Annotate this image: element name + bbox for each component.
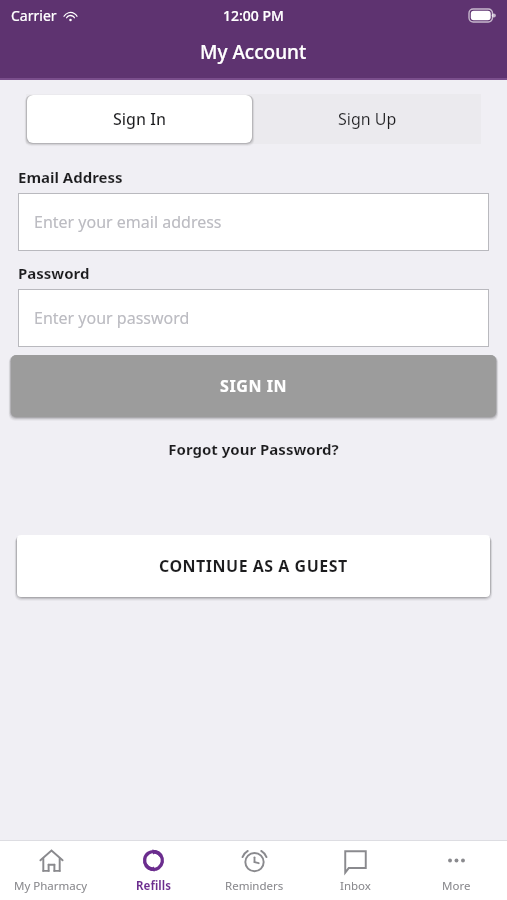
staticText: Enter your password [34, 307, 190, 329]
staticText: Reminders [225, 878, 284, 894]
staticText: CONTINUE AS A GUEST [159, 555, 348, 577]
staticText: Email Address [18, 167, 123, 187]
button[interactable]: Inbox [305, 841, 406, 900]
button[interactable]: Sign Up [253, 94, 481, 144]
staticText: Carrier [11, 6, 57, 25]
button[interactable]: My Pharmacy [0, 841, 102, 900]
button[interactable]: More [406, 841, 507, 900]
button[interactable]: Sign In [27, 95, 252, 143]
button[interactable]: Refills [102, 841, 204, 900]
staticText: Enter your email address [34, 211, 222, 233]
staticText: 12:00 PM [223, 6, 284, 25]
staticText: My Account [200, 39, 307, 65]
button[interactable]: Enter your password [18, 289, 489, 347]
staticText: More [442, 878, 471, 894]
staticText: My Pharmacy [14, 878, 88, 894]
staticText: Sign Up [338, 108, 397, 130]
staticText: Password [18, 263, 90, 283]
button[interactable]: Forgot your Password? [0, 435, 507, 463]
button[interactable]: Reminders [204, 841, 305, 900]
staticText: SIGN IN [220, 375, 288, 397]
button[interactable]: SIGN IN [11, 355, 496, 417]
button[interactable]: Enter your email address [18, 193, 489, 251]
staticText: Inbox [340, 878, 371, 894]
button[interactable]: CONTINUE AS A GUEST [17, 535, 490, 597]
staticText: Sign In [113, 108, 166, 130]
staticText: Refills [136, 878, 171, 894]
